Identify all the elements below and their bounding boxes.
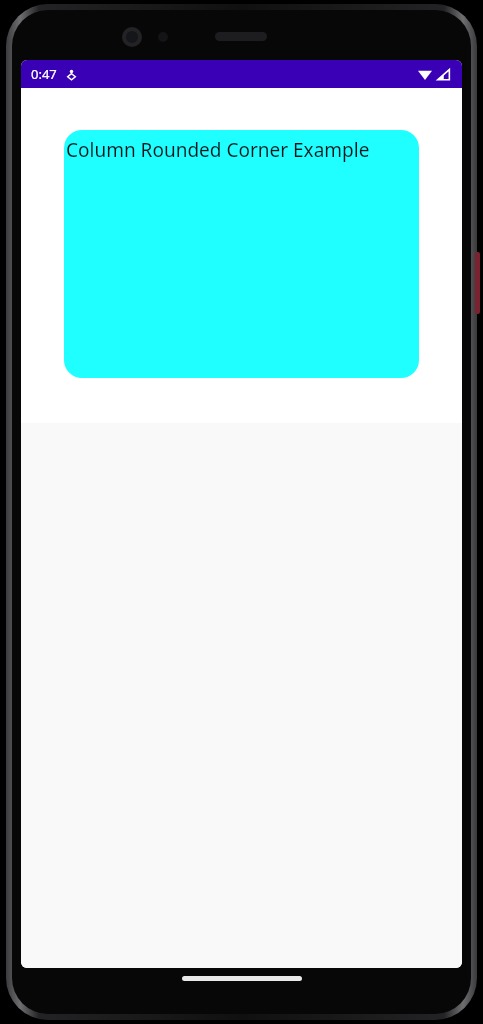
other: Home gesture bar	[182, 976, 302, 981]
staticText: Column Rounded Corner Example	[66, 137, 370, 163]
button[interactable]: Column Rounded Corner Example	[64, 130, 419, 378]
staticText: 0:47	[31, 65, 57, 83]
other: Power button	[475, 252, 480, 314]
